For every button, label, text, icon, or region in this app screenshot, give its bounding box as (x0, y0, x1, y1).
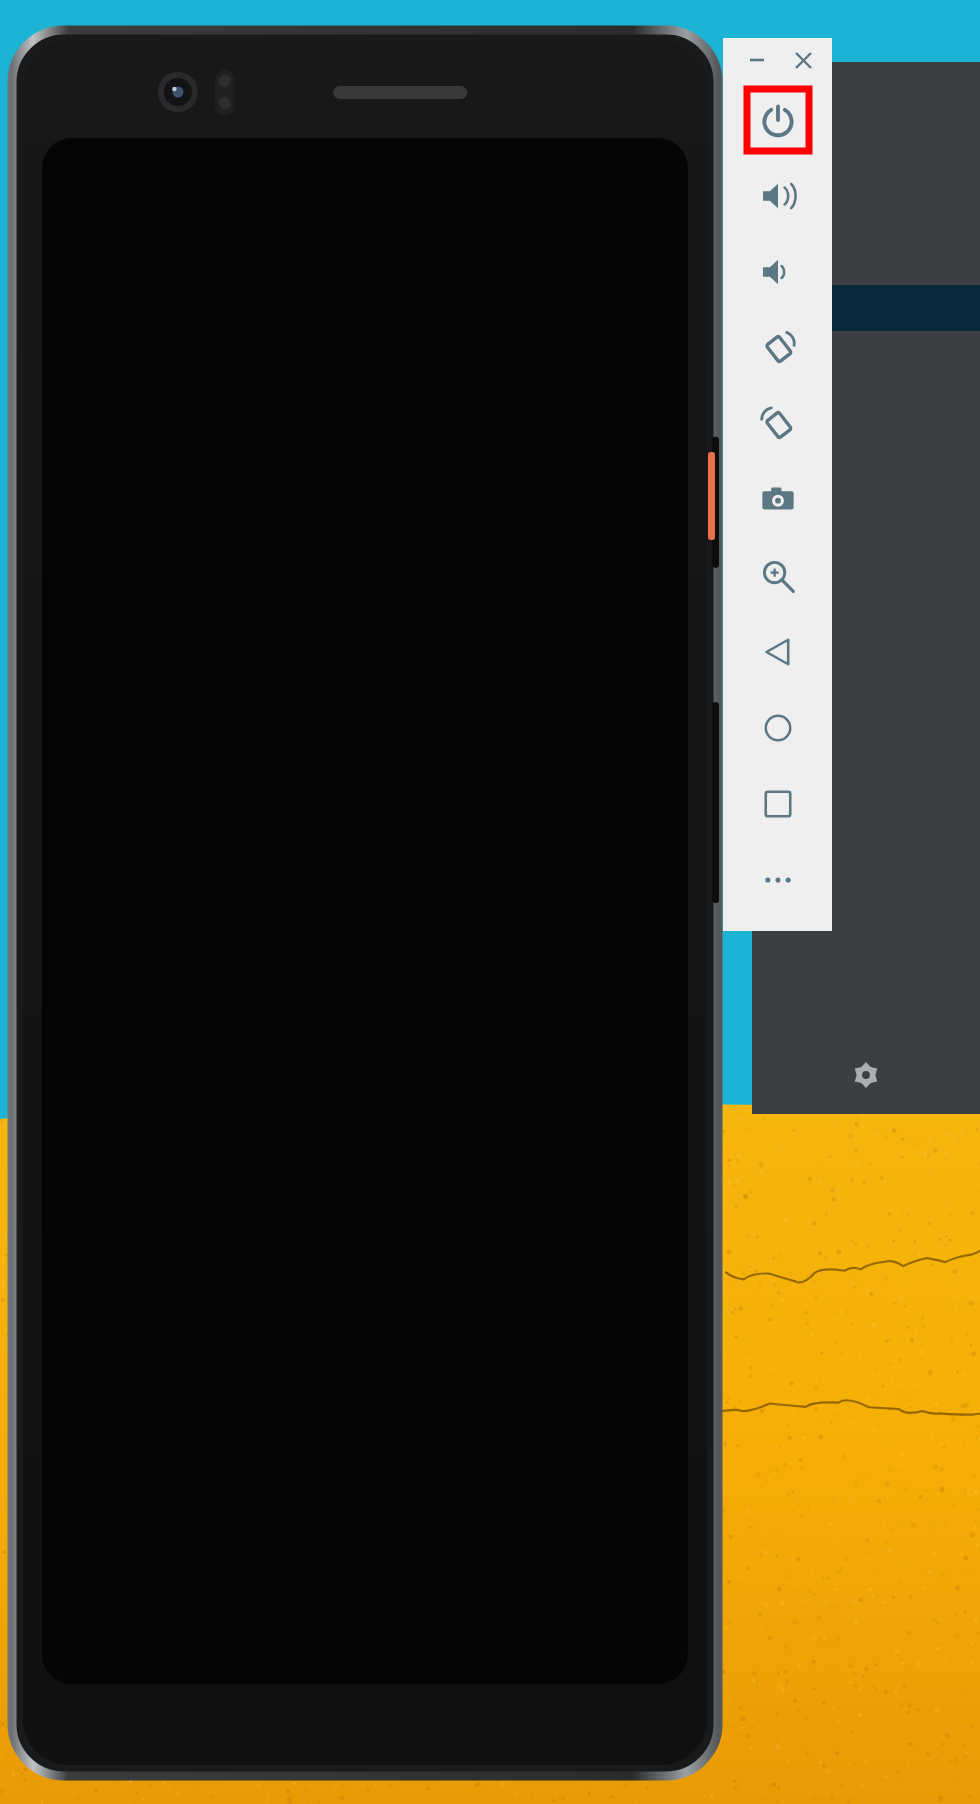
staticText: An (752, 487, 773, 510)
staticText: ni (752, 353, 773, 376)
button[interactable]: Volume up (723, 158, 832, 234)
button[interactable]: Rotate right (723, 386, 832, 462)
staticText: A (752, 185, 764, 212)
button[interactable]: Minimize (743, 46, 771, 74)
button[interactable]: More (723, 842, 832, 918)
button[interactable]: Volume down (723, 234, 832, 310)
button[interactable]: Power (723, 82, 832, 158)
button[interactable]: Back (723, 614, 832, 690)
staticText: co (752, 90, 773, 113)
button[interactable]: Rotate left (723, 310, 832, 386)
button[interactable]: Overview (723, 766, 832, 842)
button[interactable]: Home (723, 690, 832, 766)
staticText: s (752, 420, 763, 443)
button[interactable]: Zoom (723, 538, 832, 614)
button[interactable]: Close (789, 46, 817, 74)
button[interactable]: Take screenshot (723, 462, 832, 538)
